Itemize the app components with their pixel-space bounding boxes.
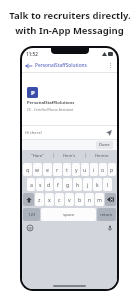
button[interactable]: s: [36, 178, 44, 191]
staticText: P: [31, 89, 35, 97]
staticText: Here's: [63, 153, 76, 159]
staticText: Done: [99, 142, 110, 148]
button[interactable]: q: [23, 163, 32, 176]
staticText: space: [63, 212, 75, 218]
button[interactable]: h: [73, 178, 82, 191]
button[interactable]: PersonalStaffSolutions: [35, 62, 87, 69]
staticText: w: [35, 166, 40, 173]
button[interactable]: Back: [22, 59, 35, 72]
button[interactable]: Backspace: [105, 193, 116, 206]
staticText: return: [100, 212, 113, 218]
staticText: g: [66, 181, 70, 188]
staticText: l: [107, 181, 109, 188]
button[interactable]: y: [72, 163, 80, 176]
staticText: f: [57, 181, 59, 188]
button[interactable]: v: [65, 193, 74, 206]
button[interactable]: space: [41, 208, 96, 221]
staticText: t: [66, 166, 68, 173]
staticText: m: [97, 196, 102, 203]
staticText: q: [26, 166, 30, 173]
staticText: k: [96, 181, 99, 188]
staticText: b: [78, 196, 82, 203]
button[interactable]: Shift: [23, 193, 34, 206]
button[interactable]: P: [25, 87, 77, 112]
button[interactable]: More options: [104, 59, 117, 72]
button[interactable]: Send: [104, 128, 114, 138]
button[interactable]: w: [33, 163, 42, 176]
staticText: i: [93, 166, 95, 173]
button[interactable]: u: [81, 163, 89, 176]
button[interactable]: m: [95, 193, 104, 206]
staticText: o: [101, 166, 105, 173]
button[interactable]: l: [103, 178, 112, 191]
staticText: Hi there!: [25, 130, 42, 136]
button[interactable]: n: [85, 193, 94, 206]
staticText: z: [38, 196, 41, 203]
button[interactable]: return: [97, 208, 116, 221]
staticText: with In-App Messaging: [15, 24, 124, 37]
button[interactable]: Dictation: [105, 223, 114, 232]
staticText: Hereto: [95, 153, 109, 159]
staticText: r: [56, 166, 59, 173]
staticText: CE - Certified Nurse Assistant: [27, 107, 74, 112]
staticText: p: [110, 166, 114, 173]
button[interactable]: Done: [96, 141, 113, 149]
button[interactable]: Here's: [54, 150, 85, 161]
staticText: 123: [28, 212, 36, 218]
staticText: y: [75, 166, 78, 173]
staticText: n: [88, 196, 92, 203]
button[interactable]: e: [43, 163, 52, 176]
staticText: PersonalStaffSolutions: [27, 100, 75, 106]
button[interactable]: x: [45, 193, 54, 206]
button[interactable]: o: [99, 163, 107, 176]
staticText: h: [76, 181, 80, 188]
staticText: v: [68, 196, 71, 203]
button[interactable]: Hereto: [86, 150, 117, 161]
staticText: x: [48, 196, 51, 203]
button[interactable]: r: [53, 163, 62, 176]
staticText: u: [83, 166, 87, 173]
button[interactable]: Emoji: [25, 223, 34, 232]
button[interactable]: "Hare": [22, 150, 53, 161]
button[interactable]: a: [27, 178, 35, 191]
button[interactable]: z: [35, 193, 44, 206]
staticText: 11:52: [26, 51, 38, 57]
button[interactable]: b: [75, 193, 84, 206]
button[interactable]: d: [45, 178, 53, 191]
button[interactable]: g: [63, 178, 72, 191]
staticText: s: [39, 181, 42, 188]
button[interactable]: j: [83, 178, 92, 191]
staticText: Talk to recruiters directly.: [9, 9, 131, 22]
staticText: "Hare": [31, 153, 44, 159]
button[interactable]: p: [108, 163, 116, 176]
button[interactable]: c: [55, 193, 64, 206]
staticText: a: [30, 181, 33, 188]
staticText: d: [47, 181, 51, 188]
staticText: e: [46, 166, 49, 173]
button[interactable]: f: [54, 178, 62, 191]
staticText: j: [87, 181, 89, 188]
button[interactable]: t: [63, 163, 71, 176]
staticText: c: [58, 196, 61, 203]
button[interactable]: i: [90, 163, 98, 176]
button[interactable]: k: [93, 178, 102, 191]
button[interactable]: 123: [23, 208, 40, 221]
